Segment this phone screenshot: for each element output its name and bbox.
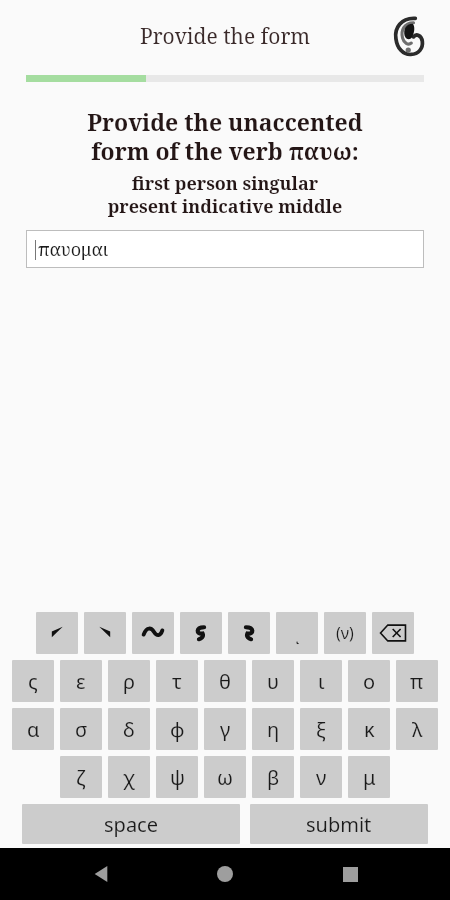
staticText: (ν) — [336, 622, 354, 644]
button[interactable]: παυομαι — [26, 230, 424, 268]
button[interactable]: Smooth breathing — [180, 612, 222, 654]
staticText: λ — [412, 716, 423, 743]
button[interactable]: space — [22, 804, 240, 844]
button[interactable]: Grave accent — [84, 612, 126, 654]
staticText: γ — [220, 716, 231, 743]
button[interactable]: β — [252, 756, 294, 798]
staticText: ξ — [316, 716, 326, 743]
staticText: η — [267, 716, 280, 743]
staticText: ψ — [170, 764, 185, 791]
button[interactable]: Backspace — [372, 612, 414, 654]
button[interactable]: δ — [108, 708, 150, 750]
button[interactable]: Rough breathing — [228, 612, 270, 654]
button[interactable]: ψ — [156, 756, 198, 798]
button[interactable]: (ν) — [324, 612, 366, 654]
button[interactable]: ε — [60, 660, 102, 702]
button[interactable]: κ — [348, 708, 390, 750]
staticText: ι — [318, 668, 325, 695]
button[interactable]: φ — [156, 708, 198, 750]
button[interactable]: σ — [60, 708, 102, 750]
button[interactable]: μ — [348, 756, 390, 798]
button[interactable]: ͅ — [276, 612, 318, 654]
staticText: χ — [123, 764, 135, 791]
button[interactable]: ω — [204, 756, 246, 798]
staticText: φ — [170, 716, 185, 743]
button[interactable]: π — [396, 660, 438, 702]
button[interactable]: ρ — [108, 660, 150, 702]
button[interactable]: submit — [250, 804, 428, 844]
staticText: α — [27, 716, 40, 743]
staticText: π — [410, 668, 424, 695]
button[interactable]: Back — [77, 850, 125, 898]
staticText: Provide the unaccented form of the verb … — [16, 106, 434, 167]
staticText: θ — [219, 668, 231, 695]
button[interactable]: ι — [300, 660, 342, 702]
button[interactable]: τ — [156, 660, 198, 702]
staticText: παυομαι — [38, 237, 109, 262]
button[interactable]: Home — [201, 850, 249, 898]
button[interactable]: θ — [204, 660, 246, 702]
button[interactable]: χ — [108, 756, 150, 798]
staticText: Provide the form — [140, 22, 311, 51]
staticText: submit — [306, 811, 372, 838]
staticText: ε — [76, 668, 86, 695]
staticText: κ — [364, 716, 375, 743]
button[interactable]: ς — [12, 660, 54, 702]
button[interactable]: Listen — [384, 10, 436, 62]
staticText: τ — [172, 668, 182, 695]
staticText: first person singular present indicative… — [16, 171, 434, 218]
button[interactable]: γ — [204, 708, 246, 750]
staticText: ρ — [123, 668, 135, 695]
staticText: ς — [28, 668, 38, 695]
button[interactable]: υ — [252, 660, 294, 702]
staticText: σ — [75, 716, 88, 743]
staticText: ω — [217, 764, 233, 791]
button[interactable]: ο — [348, 660, 390, 702]
staticText: ζ — [76, 764, 86, 791]
button[interactable]: λ — [396, 708, 438, 750]
button[interactable]: Recents — [326, 850, 374, 898]
button[interactable]: ν — [300, 756, 342, 798]
staticText: β — [267, 764, 280, 791]
staticText: space — [104, 811, 158, 838]
button[interactable]: Circumflex accent — [132, 612, 174, 654]
button[interactable]: Acute accent — [36, 612, 78, 654]
button[interactable]: ξ — [300, 708, 342, 750]
button[interactable]: η — [252, 708, 294, 750]
staticText: ο — [363, 668, 376, 695]
staticText: δ — [123, 716, 135, 743]
staticText: ν — [316, 764, 327, 791]
staticText: μ — [363, 764, 376, 791]
button[interactable]: α — [12, 708, 54, 750]
staticText: υ — [267, 668, 279, 695]
button[interactable]: ζ — [60, 756, 102, 798]
